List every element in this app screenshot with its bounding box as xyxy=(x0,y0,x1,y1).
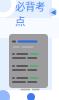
button[interactable]: Add xyxy=(0,0,59,100)
staticText: 必背考点 xyxy=(15,0,45,28)
button[interactable]: Play audio xyxy=(0,0,59,100)
staticText: ◀ xyxy=(50,8,55,16)
